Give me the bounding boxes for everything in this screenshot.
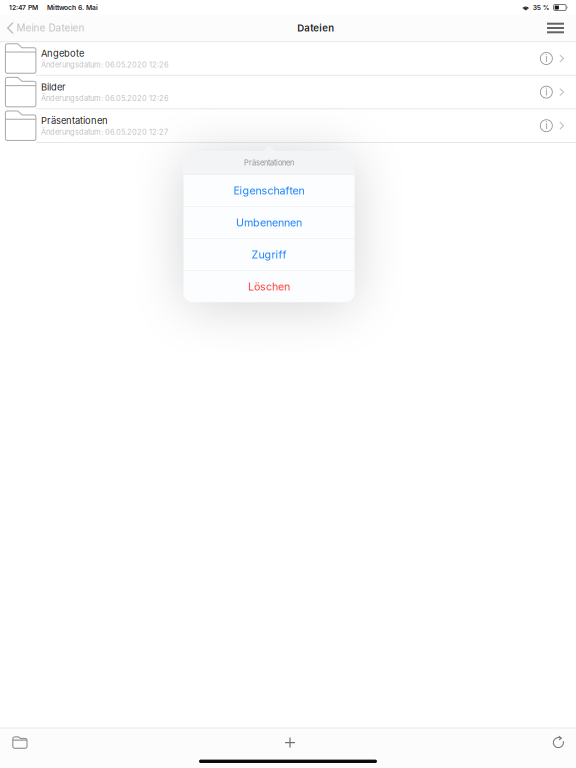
staticText: i (545, 53, 547, 64)
staticText: Änderungsdatum: 06.05.2020 12:26 (41, 94, 169, 103)
staticText: Präsentationen (244, 158, 294, 167)
button[interactable]: Umbenennen (183, 207, 354, 238)
staticText: 12:47 PM (9, 3, 38, 12)
staticText: Löschen (248, 280, 290, 293)
staticText: Änderungsdatum: 06.05.2020 12:26 (41, 60, 169, 69)
staticText: Dateien (297, 22, 334, 34)
staticText: i (545, 86, 547, 98)
staticText: 35 % (533, 3, 550, 12)
staticText: Zugriff (251, 248, 286, 261)
staticText: Bilder (41, 81, 66, 93)
button[interactable]: Aktualisieren (553, 729, 576, 757)
button[interactable]: Löschen (183, 271, 354, 302)
button[interactable]: Präsentationen (0, 109, 576, 142)
button[interactable]: Bilder (0, 76, 576, 108)
staticText: i (545, 120, 547, 131)
button[interactable]: Eigenschaften (183, 175, 354, 206)
button[interactable]: Angebote (0, 42, 576, 75)
button[interactable]: Zugriff (183, 239, 354, 270)
button[interactable]: Hinzufügen (285, 729, 295, 757)
button[interactable]: Ordner (0, 729, 27, 757)
staticText: Eigenschaften (233, 184, 304, 197)
button[interactable]: Meine Dateien (0, 15, 84, 40)
staticText: Mittwoch 6. Mai (47, 3, 98, 12)
button[interactable]: Menü (547, 15, 576, 40)
staticText: Umbenennen (236, 216, 302, 229)
staticText: Präsentationen (41, 115, 108, 126)
staticText: Angebote (41, 48, 84, 59)
staticText: Änderungsdatum: 06.05.2020 12:27 (41, 127, 168, 136)
staticText: Meine Dateien (16, 22, 84, 34)
